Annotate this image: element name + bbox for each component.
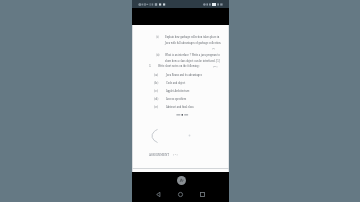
staticText: (i) xyxy=(156,36,159,39)
staticText: Code and object xyxy=(166,82,186,85)
staticText: (a) xyxy=(154,73,159,77)
staticText: 3. xyxy=(149,65,152,68)
staticText: (ii) xyxy=(156,54,160,57)
staticText: show how a class object can be interface… xyxy=(165,60,220,63)
staticText: Write short notes on the following : xyxy=(158,65,200,68)
staticText: Access specifiers xyxy=(166,98,187,101)
button[interactable]: Home xyxy=(169,188,191,201)
staticText: What is an interface ? Write a java prog… xyxy=(165,54,220,57)
staticText: [ 1 ] xyxy=(173,153,178,156)
button[interactable]: Recents xyxy=(191,188,213,201)
staticText: Java Beans and its advantages xyxy=(166,74,202,77)
staticText: Explain how garbage collection takes pla… xyxy=(165,36,220,39)
staticText: (c) xyxy=(154,89,159,93)
button[interactable]: Back xyxy=(148,188,169,201)
staticText: (d) xyxy=(154,97,159,101)
staticText: Applet Architecture xyxy=(166,90,190,93)
button[interactable]: Fit page xyxy=(177,176,186,185)
staticText: (e) xyxy=(154,105,159,109)
staticText: [20] xyxy=(213,65,218,68)
staticText: Abstract and final class xyxy=(166,106,194,109)
staticText: (b) xyxy=(154,81,159,85)
staticText: ASSIGNMENT xyxy=(149,153,170,156)
staticText: Java with full advantages of garbage col… xyxy=(165,42,222,45)
staticText: [5] xyxy=(212,47,215,50)
